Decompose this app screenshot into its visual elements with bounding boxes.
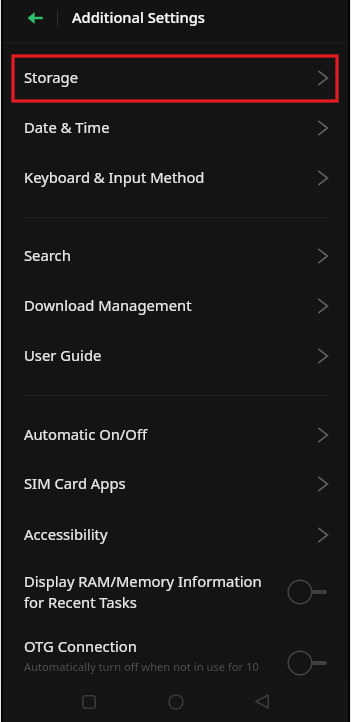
staticText: Additional Settings bbox=[72, 7, 205, 27]
button[interactable]: SIM Card Apps bbox=[0, 459, 351, 509]
button[interactable]: Navigate back bbox=[0, 0, 57, 43]
button[interactable]: User Guide bbox=[0, 331, 351, 381]
button[interactable]: Toggle switch bbox=[285, 649, 331, 677]
staticText: User Guide bbox=[24, 345, 102, 365]
button[interactable]: Download Management bbox=[0, 281, 351, 331]
button[interactable]: Storage bbox=[0, 53, 351, 103]
button[interactable]: Keyboard & Input Method bbox=[0, 153, 351, 203]
staticText: OTG Connection bbox=[24, 636, 137, 656]
staticText: for Recent Tasks bbox=[24, 592, 137, 612]
button[interactable]: Search bbox=[0, 231, 351, 281]
staticText: Download Management bbox=[24, 295, 192, 315]
button[interactable]: Accessibility bbox=[0, 510, 351, 560]
staticText: Automatic On/Off bbox=[24, 424, 148, 444]
staticText: Accessibility bbox=[24, 524, 108, 544]
button[interactable]: Automatic On/Off bbox=[0, 410, 351, 460]
staticText: Display RAM/Memory Information bbox=[24, 571, 262, 591]
staticText: Search bbox=[24, 245, 71, 265]
staticText: Date & Time bbox=[24, 117, 110, 137]
staticText: Automatically turn off when not in use f… bbox=[24, 659, 259, 674]
staticText: Keyboard & Input Method bbox=[24, 167, 205, 187]
button[interactable]: Toggle switch bbox=[285, 578, 331, 606]
button[interactable]: Display RAM/Memory Information bbox=[0, 563, 351, 617]
button[interactable]: Back bbox=[241, 681, 283, 722]
button[interactable]: OTG Connection bbox=[0, 628, 351, 676]
button[interactable]: Recent apps bbox=[68, 681, 110, 722]
staticText: SIM Card Apps bbox=[24, 473, 126, 493]
button[interactable]: Date & Time bbox=[0, 103, 351, 153]
staticText: Storage bbox=[24, 67, 78, 87]
button[interactable]: Home bbox=[155, 681, 197, 722]
